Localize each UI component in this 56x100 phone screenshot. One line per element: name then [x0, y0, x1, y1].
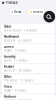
- staticText: Lumen: [4, 45, 14, 48]
- staticText: PitchLab: [6, 1, 18, 4]
- button[interactable]: Harbour: [1, 94, 54, 100]
- staticText: Decks: [14, 10, 21, 14]
- staticText: Northwind: [4, 35, 19, 38]
- button[interactable]: Vireo: [1, 84, 54, 93]
- staticText: Seed · 17 slides: [4, 59, 27, 62]
- staticText: Orbit: [4, 25, 11, 28]
- staticText: Atlas: [4, 75, 11, 78]
- staticText: Harbour: [4, 95, 16, 98]
- staticText: Foundry: [4, 55, 16, 58]
- button[interactable]: Decks: [10, 9, 23, 15]
- staticText: Recent: [33, 10, 43, 14]
- button[interactable]: Search: [43, 11, 55, 22]
- staticText: Series A · 22 slides: [4, 39, 31, 42]
- staticText: Pre-seed · 11 slides: [4, 79, 33, 82]
- button[interactable]: Recent: [29, 9, 45, 15]
- staticText: Kestrel: [4, 65, 14, 68]
- button[interactable]: Foundry: [1, 54, 54, 63]
- staticText: Seed round · 14 slides: [4, 29, 37, 32]
- staticText: Vireo: [4, 85, 12, 88]
- button[interactable]: Orbit: [1, 24, 54, 33]
- button[interactable]: Northwind: [1, 34, 54, 43]
- staticText: Series B · 28 slides: [4, 69, 31, 72]
- staticText: Series A · 19 slides: [4, 99, 31, 100]
- button[interactable]: Kestrel: [1, 64, 54, 73]
- button[interactable]: Lumen: [1, 44, 54, 53]
- staticText: Teaser · 9 slides: [4, 49, 26, 52]
- staticText: Teaser · 8 slides: [4, 89, 26, 92]
- button[interactable]: Atlas: [1, 74, 54, 83]
